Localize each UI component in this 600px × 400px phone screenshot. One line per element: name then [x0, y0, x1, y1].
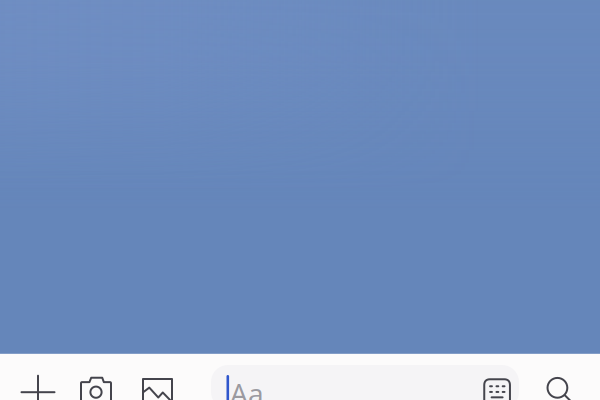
button[interactable]: Keyboard — [477, 372, 517, 400]
button[interactable]: Camera — [71, 366, 121, 400]
button[interactable]: Search — [541, 371, 583, 400]
button[interactable]: Message — [211, 365, 519, 400]
button[interactable]: Add attachment — [13, 369, 63, 400]
button[interactable]: Photos — [132, 367, 182, 400]
staticText: Aa — [230, 375, 264, 400]
